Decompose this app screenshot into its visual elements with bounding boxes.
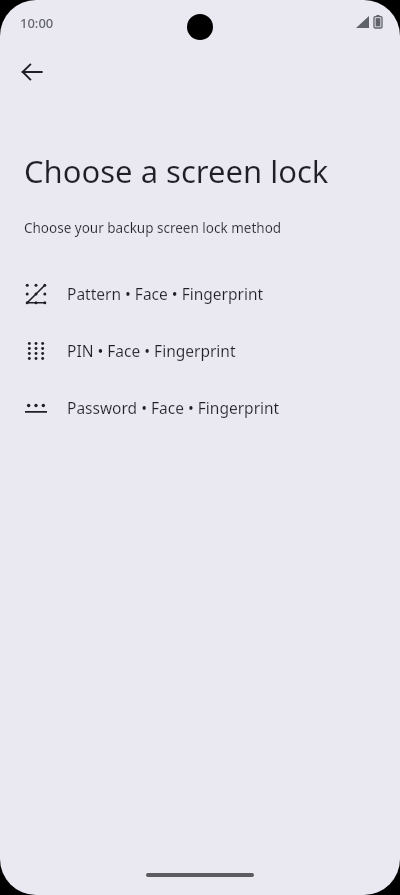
button[interactable]: Pattern • Face • Fingerprint xyxy=(0,265,400,322)
button[interactable]: Password • Face • Fingerprint xyxy=(0,379,400,436)
staticText: 10:00 xyxy=(20,14,54,32)
staticText: Password • Face • Fingerprint xyxy=(67,397,280,418)
staticText: PIN • Face • Fingerprint xyxy=(67,340,236,361)
staticText: Choose a screen lock xyxy=(24,150,329,192)
staticText: Choose your backup screen lock method xyxy=(24,219,282,237)
staticText: Pattern • Face • Fingerprint xyxy=(67,283,264,304)
button[interactable]: PIN • Face • Fingerprint xyxy=(0,322,400,379)
button[interactable]: Back xyxy=(8,48,56,96)
